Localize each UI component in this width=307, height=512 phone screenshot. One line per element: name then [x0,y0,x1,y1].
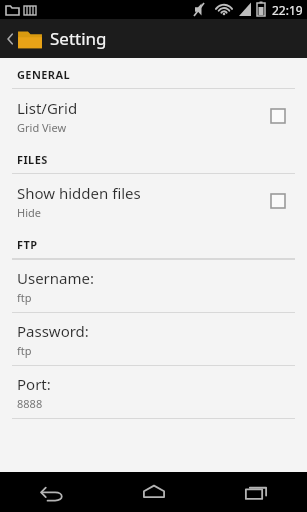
button[interactable]: Username: [0,260,307,312]
staticText: FTP [17,237,38,252]
staticText: List/Grid [17,98,78,118]
other: List/Grid [271,109,285,123]
staticText: Username: [17,268,94,288]
button[interactable]: Show hidden files [0,174,307,228]
staticText: Hide [17,205,41,220]
button[interactable]: Home [103,472,205,512]
staticText: Setting [50,27,107,50]
other: Show hidden files [271,194,285,208]
staticText: Port: [17,374,51,394]
staticText: 8888 [17,396,43,411]
staticText: Password: [17,321,89,341]
button[interactable]: Up, Setting [0,19,307,58]
button[interactable]: Password: [0,313,307,365]
staticText: FILES [17,152,48,167]
button[interactable]: List/Grid [0,89,307,143]
button[interactable]: Back [0,472,103,512]
staticText: GENERAL [17,67,71,82]
button[interactable]: Port: [0,366,307,418]
staticText: ftp [17,290,32,305]
button[interactable]: Recent apps [205,472,307,512]
staticText: Show hidden files [17,183,141,203]
staticText: 22:19 [272,2,303,18]
staticText: Grid View [17,120,67,135]
staticText: ftp [17,343,32,358]
